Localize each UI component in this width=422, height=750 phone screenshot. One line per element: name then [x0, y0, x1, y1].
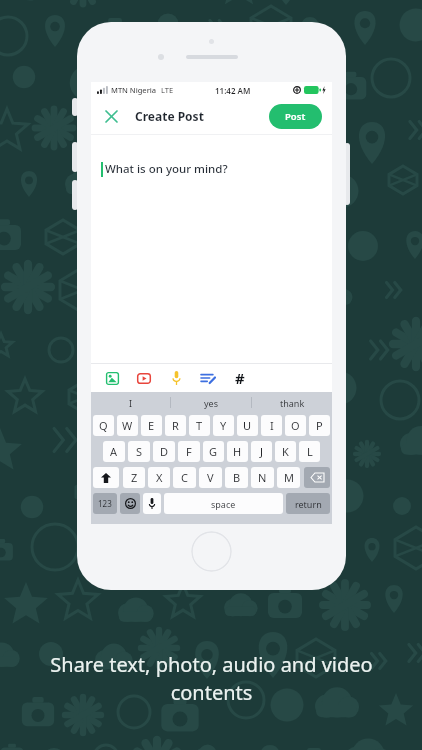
button[interactable]: V [199, 467, 222, 488]
staticText: F [186, 444, 192, 459]
staticText: Create Post [135, 108, 204, 124]
staticText: G [209, 444, 218, 459]
button[interactable]: U [237, 415, 258, 436]
button[interactable]: C [173, 467, 196, 488]
staticText: LTE [161, 85, 174, 95]
staticText: Q [99, 418, 108, 433]
staticText: C [181, 470, 188, 485]
staticText: D [160, 444, 169, 459]
staticText: return [295, 498, 322, 510]
button[interactable]: O [285, 415, 306, 436]
staticText: 11:42 AM [215, 85, 251, 96]
staticText: X [156, 470, 163, 485]
button[interactable]: N [251, 467, 274, 488]
button[interactable]: Post [269, 104, 322, 129]
staticText: thank [280, 397, 305, 409]
staticText: A [110, 444, 118, 459]
button[interactable]: D [153, 441, 175, 462]
staticText: K [282, 444, 289, 459]
button[interactable]: E [141, 415, 162, 436]
staticText: O [291, 418, 300, 433]
staticText: L [307, 444, 313, 459]
button[interactable]: Q [93, 415, 114, 436]
button[interactable]: I [261, 415, 282, 436]
button[interactable]: K [275, 441, 296, 462]
staticText: M [284, 470, 294, 485]
button[interactable]: A [103, 441, 125, 462]
staticText: I [270, 418, 274, 433]
button[interactable]: P [309, 415, 330, 436]
button[interactable]: S [128, 441, 150, 462]
button[interactable]: W [117, 415, 138, 436]
button[interactable]: R [165, 415, 186, 436]
button[interactable]: M [277, 467, 300, 488]
button[interactable]: I [91, 392, 170, 413]
staticText: What is on your mind? [105, 161, 228, 177]
button[interactable]: L [299, 441, 320, 462]
button[interactable]: J [251, 441, 272, 462]
button[interactable] [93, 467, 119, 488]
staticText: T [196, 418, 203, 433]
button[interactable]: T [189, 415, 210, 436]
button[interactable]: Record audio [165, 367, 187, 389]
staticText: J [260, 444, 264, 459]
staticText: 123 [98, 498, 112, 509]
staticText: Y [220, 418, 227, 433]
button[interactable]: space [164, 493, 283, 514]
button[interactable]: X [148, 467, 170, 488]
button[interactable]: Y [213, 415, 234, 436]
staticText: Share text, photo, audio and video conte… [50, 651, 373, 706]
staticText: S [136, 444, 143, 459]
staticText: V [207, 470, 214, 485]
button[interactable]: G [203, 441, 224, 462]
button[interactable]: Add video [133, 367, 155, 389]
staticText: N [258, 470, 267, 485]
staticText: Z [131, 470, 138, 485]
staticText: R [172, 418, 179, 433]
button[interactable]: yes [171, 392, 251, 413]
button[interactable]: thank [252, 392, 332, 413]
staticText: H [233, 444, 242, 459]
button[interactable]: return [286, 493, 330, 514]
staticText: space [211, 498, 236, 510]
button[interactable]: Close [101, 106, 121, 126]
button[interactable]: Z [123, 467, 145, 488]
button[interactable]: B [225, 467, 248, 488]
button[interactable] [143, 493, 161, 514]
staticText: Post [285, 110, 306, 123]
button[interactable]: 123 [93, 493, 117, 514]
staticText: U [243, 418, 252, 433]
staticText: I [129, 397, 133, 409]
staticText: # [235, 368, 245, 388]
staticText: W [122, 418, 133, 433]
staticText: B [233, 470, 241, 485]
button[interactable]: H [227, 441, 248, 462]
staticText: yes [204, 397, 218, 409]
button[interactable]: Add photo [101, 367, 123, 389]
staticText: P [316, 418, 323, 433]
button[interactable]: Write article [197, 367, 219, 389]
button[interactable]: Add hashtag [229, 367, 251, 389]
staticText: MTN Nigeria [111, 85, 157, 95]
staticText: E [148, 418, 155, 433]
button[interactable]: F [178, 441, 200, 462]
button[interactable] [304, 467, 330, 488]
button[interactable] [120, 493, 140, 514]
